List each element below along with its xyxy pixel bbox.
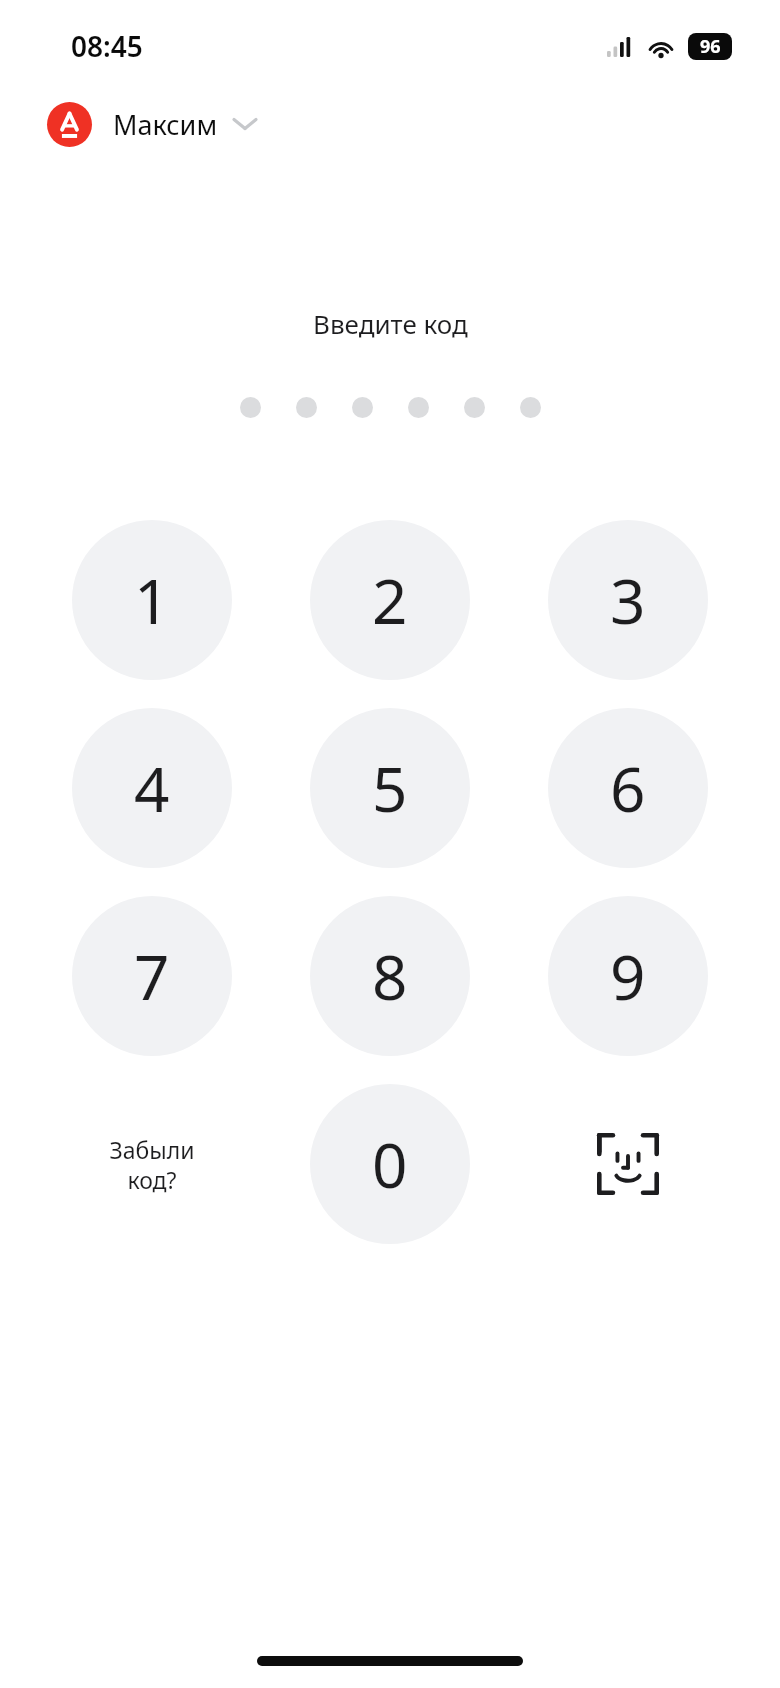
staticText: Введите код — [313, 306, 468, 341]
button[interactable]: 4 — [72, 708, 232, 868]
button[interactable]: 1 — [72, 520, 232, 680]
button[interactable]: Максим — [0, 92, 780, 156]
staticText: 7 — [134, 934, 170, 1018]
button[interactable]: 8 — [310, 896, 470, 1056]
button[interactable]: 5 — [310, 708, 470, 868]
button[interactable]: 6 — [548, 708, 708, 868]
staticText: 3 — [610, 558, 646, 642]
button[interactable]: Face ID — [548, 1084, 708, 1244]
staticText: Забыли код? — [109, 1134, 195, 1195]
staticText: 2 — [372, 558, 408, 642]
button[interactable]: 9 — [548, 896, 708, 1056]
button[interactable]: Забыли код? — [72, 1084, 232, 1244]
staticText: 4 — [134, 746, 170, 830]
button[interactable]: 7 — [72, 896, 232, 1056]
staticText: 0 — [372, 1122, 408, 1206]
staticText: 08:45 — [71, 27, 143, 65]
button[interactable]: 0 — [310, 1084, 470, 1244]
staticText: 6 — [610, 746, 646, 830]
button[interactable]: 2 — [310, 520, 470, 680]
staticText: 5 — [372, 746, 408, 830]
staticText: Максим — [113, 106, 218, 143]
staticText: 9 — [610, 934, 646, 1018]
button[interactable]: 3 — [548, 520, 708, 680]
staticText: 8 — [372, 934, 408, 1018]
staticText: 96 — [700, 34, 721, 59]
staticText: 1 — [134, 558, 170, 642]
